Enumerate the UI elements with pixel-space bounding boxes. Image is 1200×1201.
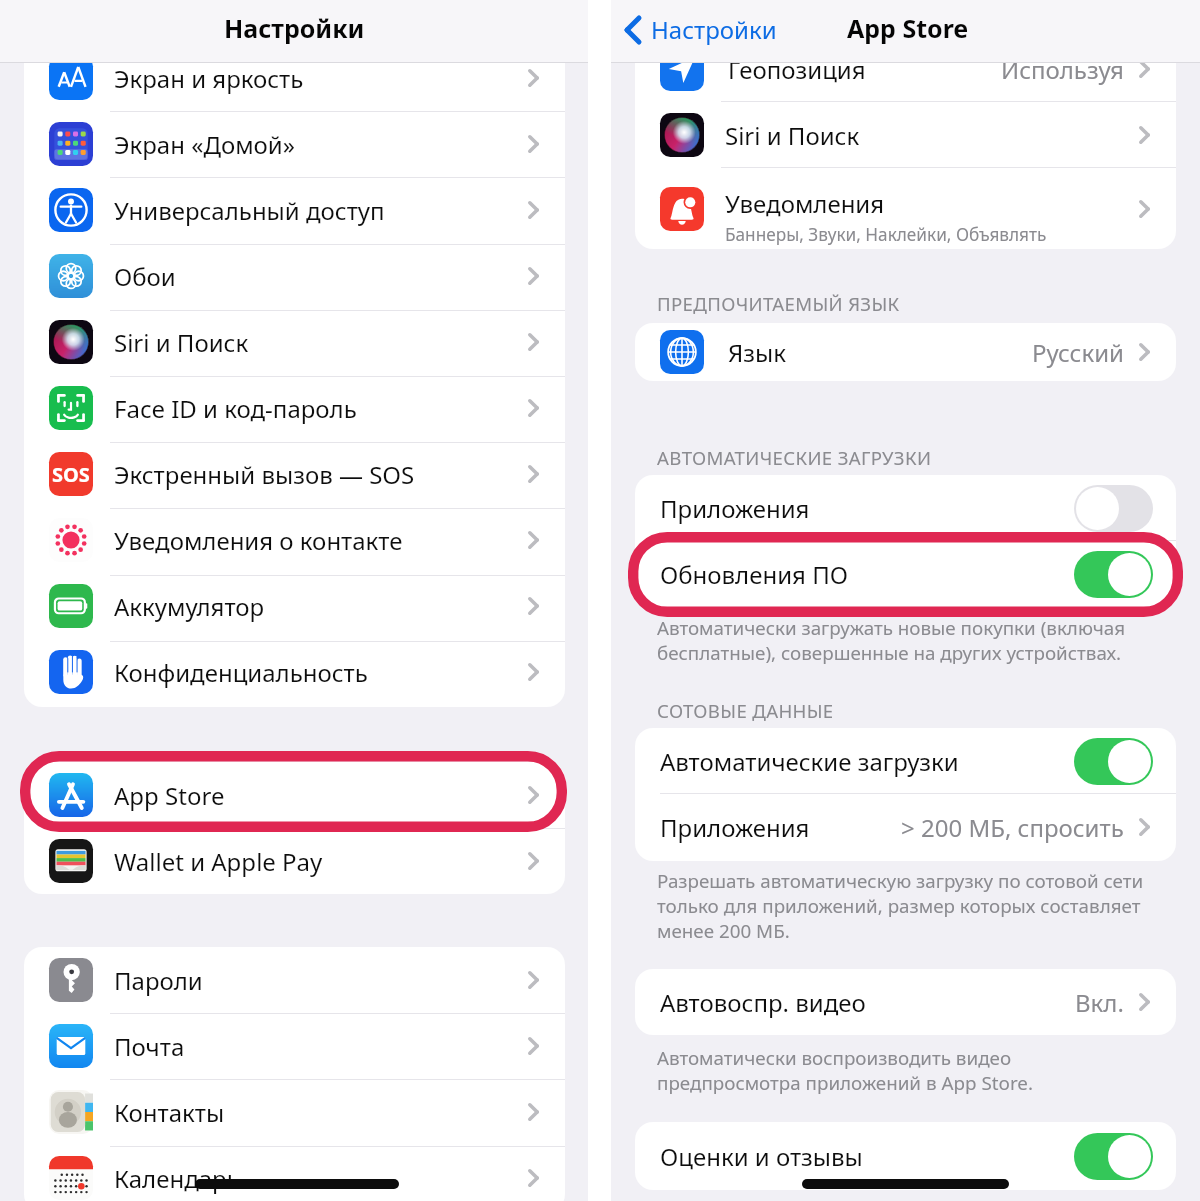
staticText: Разрешать автоматическую загрузку по сот…: [657, 868, 1144, 943]
button[interactable]: Автоматические загрузки: [635, 728, 1176, 794]
staticText: > 200 МБ, спросить: [901, 811, 1124, 844]
button[interactable]: Почта: [24, 1013, 565, 1079]
staticText: Настройки: [224, 11, 365, 45]
button[interactable]: Приложения: [635, 794, 1176, 860]
staticText: Автоматически воспроизводить видео предп…: [657, 1045, 1033, 1095]
button[interactable]: Аккумулятор: [24, 573, 565, 639]
staticText: Обновления ПО: [660, 558, 849, 591]
button[interactable]: Календарь: [24, 1145, 565, 1201]
staticText: Обои: [114, 260, 176, 293]
other: Назад: [625, 16, 641, 44]
staticText: Приложения: [660, 811, 810, 844]
staticText: SOS: [52, 461, 90, 488]
staticText: Аккумулятор: [114, 590, 265, 623]
button[interactable]: Приложения: [635, 475, 1176, 541]
staticText: Wallet и Apple Pay: [114, 845, 323, 878]
button[interactable]: Язык: [635, 323, 1176, 381]
staticText: Уведомления о контакте: [114, 524, 403, 557]
button[interactable]: Обои: [24, 243, 565, 309]
staticText: Автоматические загрузки: [660, 745, 959, 778]
button[interactable]: SOS: [24, 441, 565, 507]
button[interactable]: Экран «Домой»: [24, 111, 565, 177]
button[interactable]: Пароли: [24, 947, 565, 1013]
button[interactable]: Контакты: [24, 1079, 565, 1145]
button[interactable]: Универсальный доступ: [24, 177, 565, 243]
button[interactable]: Геопозиция: [635, 36, 1176, 102]
staticText: Экран и яркость: [114, 62, 304, 95]
button[interactable]: Оценки и отзывы: [635, 1122, 1176, 1190]
button[interactable]: Назад: [625, 13, 777, 46]
staticText: Экран «Домой»: [114, 128, 295, 161]
staticText: Настройки: [651, 13, 777, 46]
button[interactable]: Уведомления: [635, 168, 1176, 249]
button[interactable]: Конфиденциальность: [24, 639, 565, 705]
staticText: АВТОМАТИЧЕСКИЕ ЗАГРУЗКИ: [657, 445, 932, 470]
button[interactable]: Обновления ПО: [635, 541, 1176, 607]
staticText: Баннеры, Звуки, Наклейки, Объявлять: [725, 223, 1047, 246]
staticText: Оценки и отзывы: [660, 1140, 863, 1173]
button[interactable]: Wallet и Apple Pay: [24, 828, 565, 894]
button[interactable]: Включено: [1074, 738, 1153, 785]
staticText: Универсальный доступ: [114, 194, 385, 227]
staticText: Почта: [114, 1030, 185, 1063]
button[interactable]: Face ID и код-пароль: [24, 375, 565, 441]
staticText: Конфиденциальность: [114, 656, 368, 689]
staticText: Автовоспр. видео: [660, 986, 866, 1019]
staticText: Календарь: [114, 1162, 240, 1195]
staticText: Русский: [1032, 336, 1124, 369]
button[interactable]: App Store: [24, 762, 565, 828]
staticText: Экстренный вызов — SOS: [114, 458, 415, 491]
staticText: Геопозиция: [728, 53, 866, 86]
button[interactable]: Включено: [1074, 551, 1153, 598]
staticText: СОТОВЫЕ ДАННЫЕ: [657, 698, 834, 723]
staticText: Автоматически загружать новые покупки (в…: [657, 615, 1126, 665]
button[interactable]: Выключено: [1074, 485, 1153, 532]
staticText: Контакты: [114, 1096, 225, 1129]
staticText: Siri и Поиск: [114, 326, 249, 359]
staticText: App Store: [847, 11, 969, 45]
staticText: Приложения: [660, 492, 810, 525]
staticText: Вкл.: [1075, 986, 1124, 1019]
button[interactable]: Siri и Поиск: [635, 102, 1176, 168]
staticText: Siri и Поиск: [725, 119, 860, 152]
staticText: Пароли: [114, 964, 203, 997]
staticText: App Store: [114, 779, 225, 812]
staticText: ПРЕДПОЧИТАЕМЫЙ ЯЗЫК: [657, 291, 900, 316]
staticText: Уведомления: [725, 187, 885, 220]
staticText: Язык: [728, 336, 786, 369]
button[interactable]: Siri и Поиск: [24, 309, 565, 375]
button[interactable]: Экран и яркость: [24, 45, 565, 111]
staticText: Face ID и код-пароль: [114, 392, 357, 425]
button[interactable]: Уведомления о контакте: [24, 507, 565, 573]
staticText: Используя: [1001, 53, 1124, 86]
button[interactable]: Автовоспр. видео: [635, 969, 1176, 1035]
button[interactable]: Включено: [1074, 1133, 1153, 1180]
